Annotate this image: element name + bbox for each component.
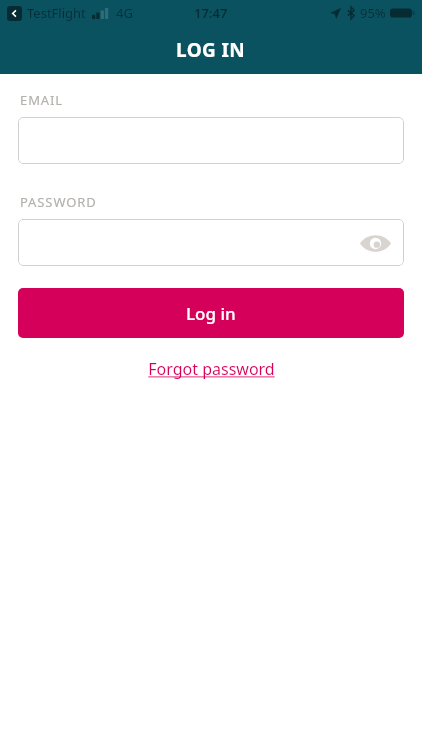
button[interactable]: Back xyxy=(7,6,22,21)
staticText: 95% xyxy=(360,4,386,22)
button[interactable] xyxy=(18,117,404,164)
button[interactable]: Show password xyxy=(358,231,392,255)
staticText: PASSWORD xyxy=(20,193,97,211)
staticText: Log in xyxy=(186,302,236,325)
staticText: TestFlight xyxy=(27,4,86,22)
staticText: 17:47 xyxy=(194,4,228,22)
button[interactable]: Forgot password xyxy=(140,354,283,384)
staticText: Forgot password xyxy=(148,358,275,380)
staticText: EMAIL xyxy=(20,91,64,109)
button[interactable]: Log in xyxy=(18,288,404,338)
button[interactable]: Show password xyxy=(18,219,404,266)
staticText: LOG IN xyxy=(176,37,246,63)
staticText: 4G xyxy=(116,4,133,22)
